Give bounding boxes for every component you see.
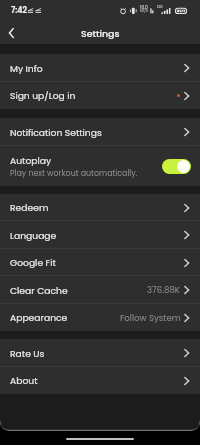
staticText: Notification Settings bbox=[10, 126, 184, 139]
staticText: Play next workout automatically. bbox=[10, 168, 138, 179]
button[interactable]: Autoplay bbox=[0, 146, 200, 186]
staticText: Sign up/Log in bbox=[10, 89, 177, 102]
button[interactable]: Google Fit bbox=[0, 249, 200, 276]
button[interactable]: Appearance bbox=[0, 304, 200, 331]
button[interactable]: Clear Cache bbox=[0, 276, 200, 304]
button[interactable]: My Info bbox=[0, 54, 200, 82]
button[interactable]: Back bbox=[0, 22, 22, 44]
button[interactable]: Notification Settings bbox=[0, 118, 200, 146]
button[interactable]: Sign up/Log in bbox=[0, 82, 200, 109]
staticText: 7:42 bbox=[11, 5, 27, 16]
staticText: 10.0 bbox=[140, 4, 148, 10]
button[interactable]: Redeem bbox=[0, 194, 200, 221]
staticText: Clear Cache bbox=[10, 284, 147, 297]
staticText: Settings bbox=[81, 27, 120, 40]
staticText: Appearance bbox=[10, 311, 120, 324]
button[interactable]: Rate Us bbox=[0, 339, 200, 367]
staticText: Follow System bbox=[120, 312, 181, 324]
staticText: Autoplay bbox=[10, 154, 52, 167]
staticText: My Info bbox=[10, 62, 184, 75]
staticText: Redeem bbox=[10, 201, 184, 214]
staticText: 79 bbox=[178, 8, 185, 15]
staticText: KB/S bbox=[140, 8, 149, 13]
button[interactable]: Autoplay toggle bbox=[162, 159, 191, 174]
button[interactable]: About bbox=[0, 367, 200, 394]
staticText: 376.88K bbox=[147, 284, 181, 296]
staticText: 120 bbox=[157, 4, 163, 9]
staticText: Rate Us bbox=[10, 347, 184, 360]
staticText: Google Fit bbox=[10, 256, 184, 269]
staticText: Language bbox=[10, 229, 184, 242]
staticText: About bbox=[10, 374, 184, 387]
button[interactable]: Language bbox=[0, 221, 200, 249]
